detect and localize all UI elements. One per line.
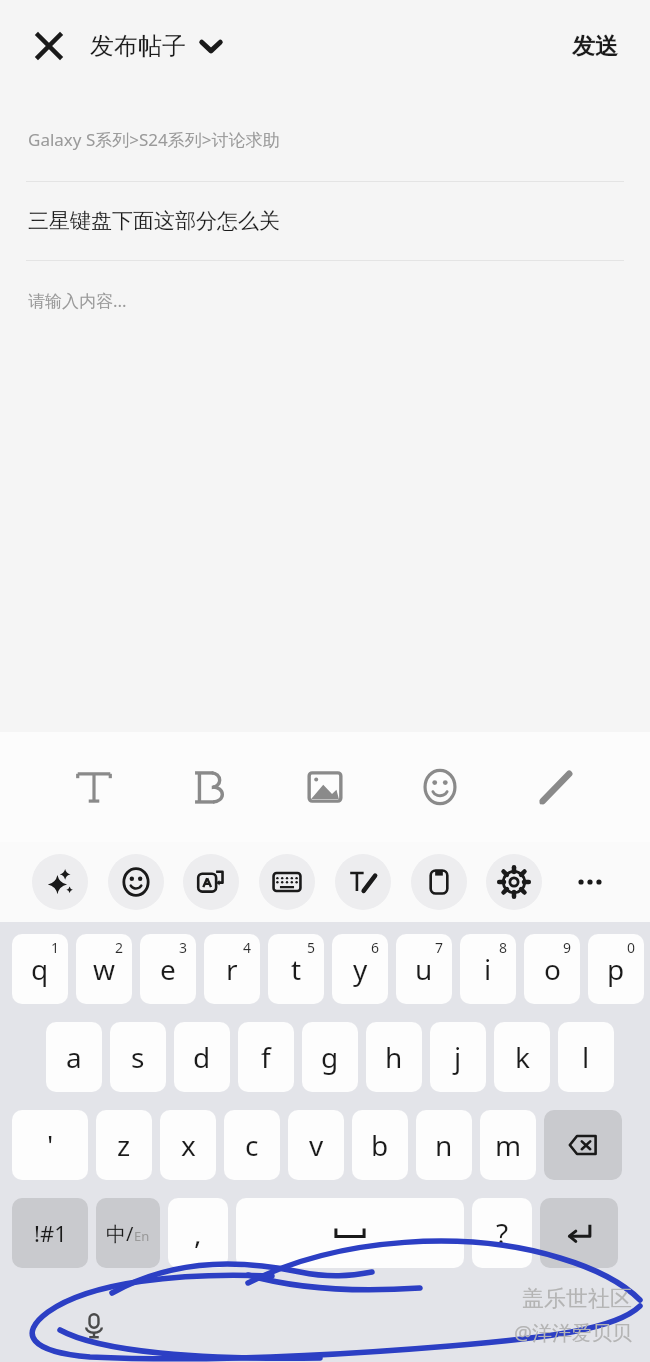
staticText: s [131, 1038, 145, 1076]
button[interactable]: !#1 [12, 1198, 88, 1268]
button[interactable]: Text style [55, 748, 133, 826]
button[interactable]: j [430, 1022, 486, 1092]
staticText: r [226, 950, 238, 988]
staticText: Galaxy S系列>S24系列>讨论求助 [28, 128, 280, 151]
button[interactable]: 发送 [566, 26, 624, 67]
staticText: 3 [179, 938, 188, 957]
button[interactable]: i [460, 934, 516, 1004]
staticText: 0 [627, 938, 636, 957]
button[interactable]: l [558, 1022, 614, 1092]
staticText: 5 [307, 938, 316, 957]
staticText: 9 [563, 938, 572, 957]
button[interactable]: Voice input [72, 1304, 116, 1348]
staticText: j [454, 1038, 462, 1076]
staticText: 4 [243, 938, 252, 957]
staticText: 发送 [572, 32, 618, 61]
button[interactable]: 中/ [96, 1198, 160, 1268]
staticText: z [117, 1126, 131, 1164]
button[interactable]: 发布帖子 [90, 31, 222, 61]
button[interactable]: w [76, 934, 132, 1004]
staticText: t [291, 950, 302, 988]
staticText: q [31, 950, 49, 988]
staticText: x [181, 1126, 196, 1164]
staticText: 1 [51, 938, 60, 957]
staticText: f [261, 1038, 271, 1076]
button[interactable]: m [480, 1110, 536, 1180]
button[interactable]: Emoji [108, 854, 164, 910]
button[interactable]: y [332, 934, 388, 1004]
button[interactable]: g [302, 1022, 358, 1092]
button[interactable]: More [562, 854, 618, 910]
button[interactable]: s [110, 1022, 166, 1092]
staticText: ? [496, 1214, 509, 1252]
button[interactable]: enter [540, 1198, 618, 1268]
button[interactable]: Translate [183, 854, 239, 910]
button[interactable]: t [268, 934, 324, 1004]
staticText: 6 [371, 938, 380, 957]
staticText: @洋洋爱贝贝 [514, 1319, 632, 1346]
button[interactable]: Clipboard [411, 854, 467, 910]
button[interactable]: k [494, 1022, 550, 1092]
staticText: , [194, 1214, 202, 1252]
button[interactable]: z [96, 1110, 152, 1180]
staticText: o [544, 950, 561, 988]
button[interactable]: Draw [517, 748, 595, 826]
staticText: e [160, 950, 176, 988]
staticText: u [415, 950, 433, 988]
button[interactable]: Settings [486, 854, 542, 910]
button[interactable]: Insert image [286, 748, 364, 826]
button[interactable]: Keyboard mode [259, 854, 315, 910]
staticText: 请输入内容... [28, 289, 127, 312]
button[interactable]: e [140, 934, 196, 1004]
staticText: 三星键盘下面这部分怎么关 [28, 208, 280, 234]
button[interactable]: x [160, 1110, 216, 1180]
button[interactable]: Emoji [401, 748, 479, 826]
staticText: b [371, 1126, 389, 1164]
staticText: v [309, 1126, 324, 1164]
staticText: 7 [435, 938, 444, 957]
button[interactable]: c [224, 1110, 280, 1180]
button[interactable]: u [396, 934, 452, 1004]
staticText: En [134, 1227, 150, 1245]
button[interactable]: h [366, 1022, 422, 1092]
button[interactable]: Handwriting [335, 854, 391, 910]
staticText: y [353, 950, 368, 988]
button[interactable]: f [238, 1022, 294, 1092]
staticText: l [582, 1038, 590, 1076]
button[interactable]: , [168, 1198, 228, 1268]
staticText: p [607, 950, 625, 988]
staticText: !#1 [34, 1218, 67, 1248]
staticText: a [66, 1038, 82, 1076]
staticText: 盖乐世社区 [522, 1285, 632, 1313]
button[interactable]: r [204, 934, 260, 1004]
button[interactable]: p [588, 934, 644, 1004]
button[interactable]: d [174, 1022, 230, 1092]
button[interactable]: ? [472, 1198, 532, 1268]
staticText: ' [47, 1126, 54, 1164]
staticText: 2 [115, 938, 124, 957]
staticText: g [321, 1038, 339, 1076]
staticText: k [515, 1038, 530, 1076]
staticText: 中/ [106, 1220, 134, 1247]
staticText: n [435, 1126, 453, 1164]
button[interactable]: o [524, 934, 580, 1004]
button[interactable]: v [288, 1110, 344, 1180]
staticText: d [193, 1038, 211, 1076]
button[interactable]: AI suggest [32, 854, 88, 910]
staticText: w [93, 950, 116, 988]
button[interactable]: b [352, 1110, 408, 1180]
staticText: 8 [499, 938, 508, 957]
button[interactable]: q [12, 934, 68, 1004]
staticText: i [484, 950, 492, 988]
button[interactable]: a [46, 1022, 102, 1092]
staticText: m [495, 1126, 522, 1164]
staticText: c [245, 1126, 259, 1164]
button[interactable]: n [416, 1110, 472, 1180]
staticText: 发布帖子 [90, 31, 186, 61]
button[interactable]: space [236, 1198, 464, 1268]
button[interactable]: Close [26, 23, 72, 69]
button[interactable]: backspace [544, 1110, 622, 1180]
button[interactable]: Bold [171, 748, 249, 826]
button[interactable]: ' [12, 1110, 88, 1180]
staticText: h [385, 1038, 403, 1076]
